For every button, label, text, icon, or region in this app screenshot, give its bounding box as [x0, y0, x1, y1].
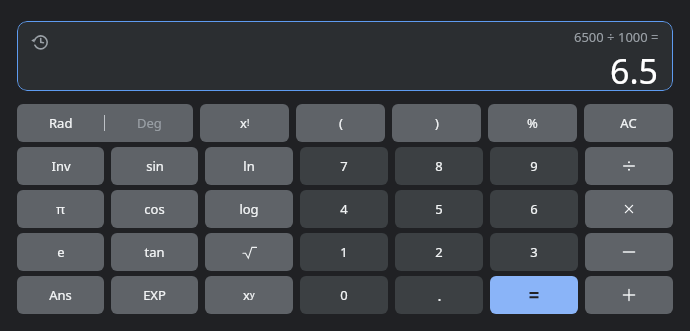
staticText: 4	[340, 200, 348, 218]
staticText: x	[243, 286, 250, 304]
staticText: EXP	[143, 286, 166, 304]
button[interactable]: )	[392, 104, 481, 142]
staticText: 8	[435, 157, 443, 175]
button[interactable]: 9	[490, 147, 578, 185]
staticText: 1	[340, 243, 348, 261]
staticText: (	[339, 114, 343, 132]
staticText: .	[437, 285, 442, 305]
button[interactable]: 6	[490, 190, 578, 228]
staticText: π	[56, 200, 65, 218]
button[interactable]: History	[27, 29, 53, 55]
staticText: y	[250, 288, 255, 300]
button[interactable]: tan	[111, 233, 198, 271]
staticText: ln	[243, 157, 255, 175]
button[interactable]: log	[205, 190, 293, 228]
button[interactable]: 1	[300, 233, 388, 271]
staticText: 3	[530, 243, 538, 261]
staticText: sin	[146, 157, 164, 175]
button[interactable]: x	[200, 104, 289, 142]
button[interactable]: 0	[300, 276, 388, 314]
button[interactable]: Rad	[17, 104, 193, 142]
staticText: 5	[435, 200, 443, 218]
staticText: %	[527, 114, 538, 132]
staticText: 2	[435, 243, 443, 261]
staticText: cos	[144, 200, 165, 218]
button[interactable]: Plus	[585, 276, 673, 314]
staticText: 6	[530, 200, 538, 218]
button[interactable]: Ans	[17, 276, 104, 314]
button[interactable]: 3	[490, 233, 578, 271]
staticText: 7	[340, 157, 348, 175]
button[interactable]: 2	[395, 233, 483, 271]
button[interactable]: %	[488, 104, 577, 142]
button[interactable]: EXP	[111, 276, 198, 314]
staticText: Inv	[51, 157, 71, 175]
staticText: Deg	[137, 114, 162, 132]
button[interactable]: Inv	[17, 147, 104, 185]
staticText: 9	[530, 157, 538, 175]
staticText: tan	[144, 243, 165, 261]
button[interactable]: x	[205, 276, 293, 314]
button[interactable]: 4	[300, 190, 388, 228]
button[interactable]: .	[395, 276, 483, 314]
button[interactable]: Multiply	[585, 190, 673, 228]
button[interactable]: cos	[111, 190, 198, 228]
staticText: Rad	[49, 114, 73, 132]
staticText: e	[57, 243, 65, 261]
button[interactable]: ln	[205, 147, 293, 185]
button[interactable]: sin	[111, 147, 198, 185]
button[interactable]: (	[296, 104, 385, 142]
button[interactable]: Divide	[585, 147, 673, 185]
staticText: Ans	[49, 286, 72, 304]
staticText: x	[240, 114, 247, 132]
staticText: 6500 ÷ 1000 =	[574, 28, 659, 46]
button[interactable]: Equals	[490, 276, 578, 314]
button[interactable]: π	[17, 190, 104, 228]
button[interactable]: AC	[584, 104, 673, 142]
button[interactable]: Square root	[205, 233, 293, 271]
button[interactable]: 5	[395, 190, 483, 228]
button[interactable]: Minus	[585, 233, 673, 271]
staticText: AC	[620, 114, 637, 132]
staticText: 0	[340, 286, 348, 304]
button[interactable]: 7	[300, 147, 388, 185]
staticText: 6.5	[610, 48, 659, 91]
staticText: )	[435, 114, 439, 132]
staticText: log	[239, 200, 259, 218]
button[interactable]: 8	[395, 147, 483, 185]
staticText: !	[247, 116, 250, 128]
button[interactable]: e	[17, 233, 104, 271]
